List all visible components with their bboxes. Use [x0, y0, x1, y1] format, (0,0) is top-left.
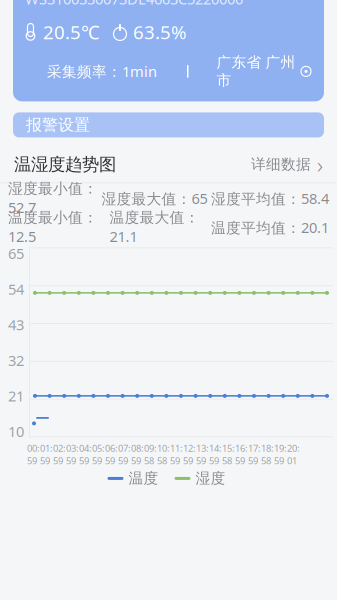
staticText: 温湿度趋势图: [14, 154, 116, 175]
staticText: 32: [8, 350, 24, 370]
staticText: 报警设置: [26, 115, 90, 135]
staticText: 65: [8, 244, 24, 263]
staticText: 18:58: [261, 442, 274, 467]
staticText: 湿度平均值：58.4: [211, 189, 329, 208]
staticText: 详细数据: [251, 155, 311, 173]
staticText: 21: [8, 386, 24, 406]
staticText: 03:59: [66, 442, 79, 467]
staticText: 09:58: [144, 442, 157, 467]
staticText: 10: [8, 422, 24, 441]
staticText: 19:59: [274, 442, 287, 467]
staticText: 14:59: [209, 442, 222, 467]
staticText: 07:59: [118, 442, 131, 467]
staticText: 00:59: [27, 442, 40, 467]
staticText: 13:59: [196, 442, 209, 467]
staticText: 温度: [128, 469, 158, 487]
staticText: 11:59: [170, 442, 183, 467]
staticText: 02:59: [53, 442, 66, 467]
staticText: 设备编号：WS3100330073DE4603C5220000: [25, 0, 243, 9]
staticText: 43: [8, 315, 24, 334]
staticText: 05:59: [92, 442, 105, 467]
staticText: 16:59: [235, 442, 248, 467]
staticText: 温度最大值：21.1: [109, 209, 199, 246]
staticText: 06:59: [105, 442, 118, 467]
staticText: 15:58: [222, 442, 235, 467]
staticText: 20:01: [287, 442, 300, 467]
staticText: 采集频率：1min: [47, 62, 157, 81]
button[interactable]: 温湿度趋势图: [0, 146, 337, 182]
staticText: 温度平均值：20.1: [211, 218, 329, 237]
staticText: 12:59: [183, 442, 196, 467]
staticText: 63.5%: [133, 20, 187, 44]
staticText: 54: [8, 279, 24, 299]
staticText: 温度最小值：12.5: [8, 209, 98, 246]
staticText: ›: [317, 149, 323, 179]
staticText: 17:59: [248, 442, 261, 467]
staticText: 湿度最小值：52.7: [8, 180, 98, 217]
staticText: 湿度最大值：65: [101, 189, 207, 208]
staticText: 08:59: [131, 442, 144, 467]
staticText: 10:58: [157, 442, 170, 467]
staticText: 20.5℃: [43, 20, 100, 44]
staticText: 广东省 广州市: [216, 53, 295, 89]
button[interactable]: 报警设置: [13, 112, 324, 137]
staticText: 湿度: [195, 469, 225, 487]
staticText: 04:59: [79, 442, 92, 467]
staticText: 01:59: [40, 442, 53, 467]
